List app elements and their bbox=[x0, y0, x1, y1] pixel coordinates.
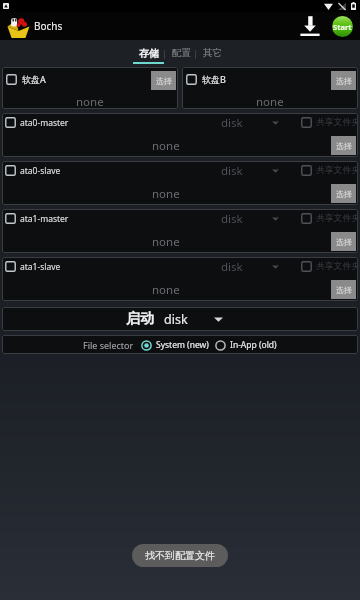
button[interactable]: System (new) bbox=[141, 339, 209, 351]
staticText: none bbox=[152, 234, 180, 250]
staticText: Bochs bbox=[34, 19, 63, 33]
staticText: 配置 bbox=[172, 47, 191, 59]
button[interactable]: 配置 bbox=[172, 44, 191, 62]
staticText: 共享文件夹 bbox=[316, 165, 358, 176]
button[interactable]: ata1-slave bbox=[5, 259, 61, 274]
staticText: ata0-master bbox=[20, 117, 69, 129]
staticText: none bbox=[256, 94, 284, 109]
staticText: System (new) bbox=[156, 339, 209, 351]
staticText: 选择 bbox=[336, 76, 352, 86]
button[interactable]: In-App (old) bbox=[215, 339, 277, 351]
button[interactable]: ata0-slave bbox=[5, 163, 61, 178]
staticText: ata1-master bbox=[20, 213, 69, 225]
staticText: File selector bbox=[83, 339, 134, 351]
staticText: ata1-slave bbox=[20, 261, 61, 273]
button[interactable]: ata1-master bbox=[5, 211, 69, 226]
button[interactable]: disk bbox=[221, 163, 281, 178]
staticText: disk bbox=[221, 163, 243, 178]
button[interactable]: 选择 bbox=[331, 280, 356, 299]
button[interactable]: 选择 bbox=[331, 136, 356, 155]
button[interactable]: 选择 bbox=[331, 71, 356, 90]
staticText: | bbox=[162, 47, 167, 59]
button[interactable]: 软盘A bbox=[6, 73, 46, 85]
staticText: disk bbox=[164, 311, 188, 328]
staticText: 选择 bbox=[336, 189, 352, 199]
staticText: 选择 bbox=[156, 76, 172, 86]
staticText: none bbox=[152, 282, 180, 298]
button[interactable]: ata0-master bbox=[5, 115, 69, 130]
staticText: | bbox=[193, 47, 198, 59]
button[interactable]: 共享文件夹 bbox=[301, 163, 358, 178]
staticText: 软盘A bbox=[22, 73, 46, 85]
staticText: disk bbox=[221, 115, 243, 130]
button[interactable]: 共享文件夹 bbox=[301, 259, 358, 274]
button[interactable]: 软盘B bbox=[186, 73, 226, 85]
button[interactable]: disk bbox=[221, 115, 281, 130]
staticText: none bbox=[152, 186, 180, 202]
button[interactable]: 选择 bbox=[151, 71, 176, 90]
button[interactable]: 共享文件夹 bbox=[301, 115, 358, 130]
button[interactable]: Download bbox=[297, 13, 323, 39]
button[interactable]: disk bbox=[221, 259, 281, 274]
button[interactable]: 其它 bbox=[203, 44, 222, 62]
staticText: none bbox=[152, 138, 180, 154]
staticText: In-App (old) bbox=[230, 339, 277, 351]
staticText: 存储 bbox=[139, 47, 159, 60]
staticText: 共享文件夹 bbox=[316, 261, 358, 272]
staticText: Start bbox=[333, 22, 352, 32]
staticText: 选择 bbox=[336, 141, 352, 151]
staticText: 共享文件夹 bbox=[316, 213, 358, 224]
staticText: 共享文件夹 bbox=[316, 117, 358, 128]
staticText: 选择 bbox=[336, 237, 352, 247]
staticText: 选择 bbox=[336, 285, 352, 295]
button[interactable]: 存储 bbox=[133, 44, 164, 62]
button[interactable]: 共享文件夹 bbox=[301, 211, 358, 226]
staticText: ata0-slave bbox=[20, 165, 61, 177]
staticText: 启动 bbox=[126, 310, 154, 328]
staticText: 其它 bbox=[203, 47, 222, 59]
button[interactable]: 选择 bbox=[331, 232, 356, 251]
staticText: none bbox=[76, 94, 104, 109]
button[interactable]: 选择 bbox=[331, 184, 356, 203]
staticText: 软盘B bbox=[202, 73, 226, 85]
staticText: 找不到配置文件 bbox=[145, 549, 215, 562]
button[interactable]: disk bbox=[164, 307, 224, 331]
staticText: disk bbox=[221, 211, 243, 226]
button[interactable]: disk bbox=[221, 211, 281, 226]
button[interactable]: Start bbox=[332, 16, 353, 37]
staticText: disk bbox=[221, 259, 243, 274]
